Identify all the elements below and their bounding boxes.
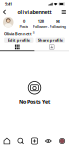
staticText: 128 <box>38 19 44 24</box>
button[interactable]: Search <box>14 135 28 147</box>
button[interactable]: Share profile <box>35 37 65 43</box>
staticText: Olivia Bennett <box>4 31 32 36</box>
button[interactable]: Tagged <box>34 44 69 51</box>
button[interactable]: Menu <box>59 8 69 16</box>
staticText: Share profile <box>38 38 63 43</box>
button[interactable]: Profile <box>55 135 69 147</box>
staticText: No Posts Yet <box>19 98 50 105</box>
button[interactable]: Home <box>0 135 14 147</box>
button[interactable]: Edit profile <box>4 37 33 43</box>
staticText: 0 <box>23 19 25 24</box>
staticText: 94 <box>56 19 60 24</box>
staticText: Edit profile <box>8 38 30 43</box>
button[interactable]: 94 <box>49 16 66 29</box>
button[interactable]: 128 <box>32 16 49 34</box>
button[interactable]: Reels <box>41 135 55 147</box>
staticText: Followers <box>33 24 49 34</box>
staticText: 9:41 <box>5 1 12 7</box>
button[interactable]: Back <box>0 8 9 16</box>
button[interactable]: 0 <box>15 16 32 29</box>
staticText: Following <box>50 24 66 29</box>
button[interactable]: Posts grid <box>0 45 34 51</box>
button[interactable]: Create <box>28 135 41 147</box>
staticText: Posts <box>19 24 28 29</box>
staticText: oliviabennett <box>17 8 51 16</box>
